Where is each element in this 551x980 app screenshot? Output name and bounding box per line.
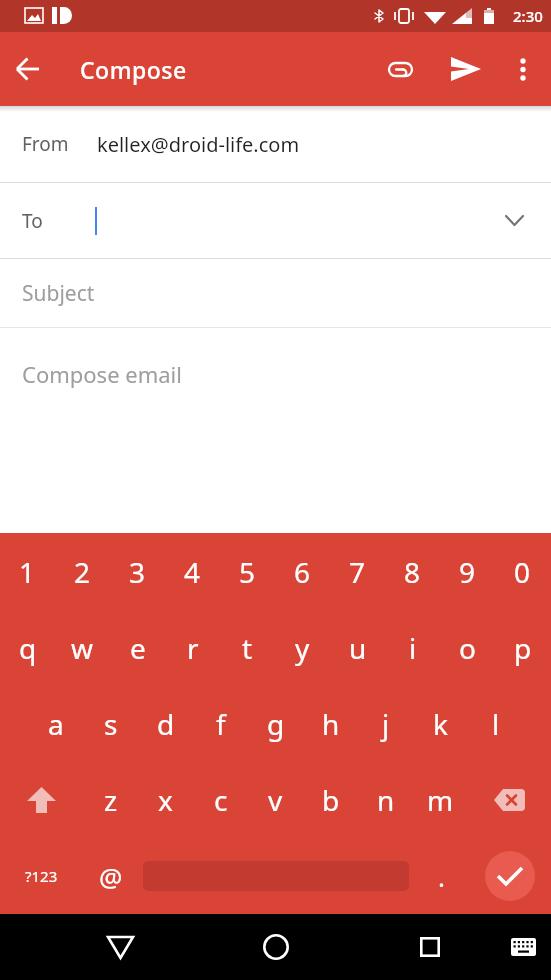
staticText: kellex@droid-life.com: [97, 131, 300, 158]
staticText: h: [322, 705, 340, 743]
button[interactable]: ?123: [0, 838, 83, 914]
button[interactable]: @: [83, 838, 138, 914]
staticText: k: [433, 705, 448, 743]
staticText: 2:30: [513, 6, 543, 26]
button[interactable]: [500, 32, 545, 106]
button[interactable]: [505, 929, 541, 965]
staticText: r: [187, 629, 199, 667]
button[interactable]: r: [165, 610, 220, 686]
staticText: n: [377, 781, 395, 819]
staticText: Compose: [80, 54, 187, 85]
button[interactable]: 1: [0, 533, 55, 610]
button[interactable]: Compose email: [0, 328, 551, 533]
button[interactable]: c: [193, 762, 248, 838]
button[interactable]: j: [358, 686, 413, 762]
staticText: To: [22, 208, 43, 234]
staticText: y: [295, 629, 310, 667]
button[interactable]: 8: [385, 533, 440, 610]
button[interactable]: d: [138, 686, 193, 762]
button[interactable]: [0, 32, 56, 106]
button[interactable]: i: [385, 610, 440, 686]
staticText: 5: [239, 553, 256, 591]
staticText: j: [382, 705, 390, 743]
staticText: e: [130, 629, 146, 667]
staticText: 6: [294, 553, 311, 591]
button[interactable]: 0: [495, 533, 550, 610]
button[interactable]: 4: [165, 533, 220, 610]
staticText: p: [514, 629, 532, 667]
staticText: Subject: [22, 279, 95, 308]
button[interactable]: v: [248, 762, 303, 838]
button[interactable]: 5: [220, 533, 275, 610]
staticText: c: [214, 781, 228, 819]
button[interactable]: x: [138, 762, 193, 838]
staticText: t: [242, 629, 253, 667]
button[interactable]: 7: [330, 533, 385, 610]
button[interactable]: k: [413, 686, 468, 762]
staticText: 9: [459, 553, 476, 591]
button[interactable]: e: [110, 610, 165, 686]
staticText: w: [71, 629, 94, 667]
button[interactable]: [256, 927, 296, 967]
button[interactable]: 3: [110, 533, 165, 610]
staticText: @: [99, 859, 123, 894]
staticText: 2: [74, 553, 91, 591]
button[interactable]: y: [275, 610, 330, 686]
staticText: q: [19, 629, 37, 667]
staticText: From: [22, 131, 69, 157]
staticText: b: [322, 781, 340, 819]
button[interactable]: [469, 838, 551, 914]
button[interactable]: z: [83, 762, 138, 838]
button[interactable]: w: [55, 610, 110, 686]
staticText: a: [48, 705, 64, 743]
staticText: o: [459, 629, 476, 667]
staticText: 8: [404, 553, 421, 591]
button[interactable]: [372, 32, 428, 106]
staticText: 4: [184, 553, 201, 591]
staticText: s: [104, 705, 118, 743]
button[interactable]: [0, 762, 83, 838]
button[interactable]: s: [83, 686, 138, 762]
button[interactable]: [138, 838, 414, 914]
staticText: d: [157, 705, 175, 743]
button[interactable]: g: [248, 686, 303, 762]
button[interactable]: 6: [275, 533, 330, 610]
button[interactable]: 9: [440, 533, 495, 610]
button[interactable]: u: [330, 610, 385, 686]
button[interactable]: From: [0, 106, 551, 182]
button[interactable]: h: [303, 686, 358, 762]
button[interactable]: l: [468, 686, 523, 762]
staticText: Compose email: [22, 359, 182, 389]
button[interactable]: To: [0, 183, 551, 258]
staticText: f: [216, 705, 226, 743]
staticText: g: [267, 705, 285, 743]
button[interactable]: [100, 927, 140, 967]
button[interactable]: n: [358, 762, 413, 838]
button[interactable]: [410, 927, 450, 967]
button[interactable]: .: [414, 838, 469, 914]
staticText: .: [438, 859, 445, 894]
staticText: 1: [19, 553, 36, 591]
button[interactable]: f: [193, 686, 248, 762]
staticText: 3: [129, 553, 146, 591]
button[interactable]: [438, 32, 494, 106]
button[interactable]: [468, 762, 551, 838]
staticText: x: [158, 781, 173, 819]
staticText: m: [427, 781, 454, 819]
staticText: i: [409, 629, 417, 667]
button[interactable]: q: [0, 610, 55, 686]
button[interactable]: o: [440, 610, 495, 686]
button[interactable]: p: [495, 610, 550, 686]
staticText: z: [104, 781, 118, 819]
staticText: l: [492, 705, 500, 743]
button[interactable]: a: [28, 686, 83, 762]
button[interactable]: m: [413, 762, 468, 838]
button[interactable]: t: [220, 610, 275, 686]
button[interactable]: 2: [55, 533, 110, 610]
staticText: u: [349, 629, 367, 667]
staticText: v: [268, 781, 283, 819]
button[interactable]: b: [303, 762, 358, 838]
staticText: 7: [349, 553, 366, 591]
button[interactable]: Subject: [0, 259, 551, 327]
staticText: 0: [514, 553, 531, 591]
